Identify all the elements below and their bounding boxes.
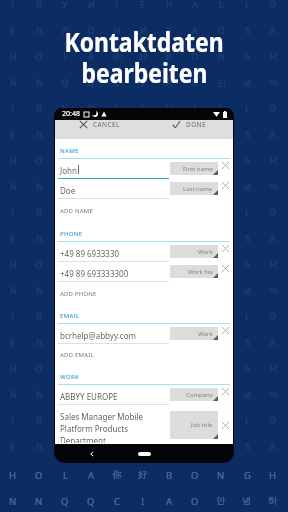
button[interactable]: ADD EMAIL: [60, 344, 233, 366]
button[interactable]: Delete: [221, 326, 230, 335]
staticText: A: [166, 180, 172, 192]
staticText: I: [141, 76, 145, 88]
staticText: У: [62, 0, 68, 10]
staticText: Q: [61, 388, 69, 400]
button[interactable]: Delete: [221, 161, 230, 170]
staticText: L: [245, 102, 250, 114]
button[interactable]: Delete: [221, 264, 230, 273]
staticText: Т: [114, 0, 120, 10]
staticText: Л: [36, 232, 43, 244]
staticText: 你: [113, 259, 122, 270]
button[interactable]: Company: [170, 388, 218, 401]
staticText: А: [192, 336, 198, 348]
button[interactable]: ABBYY EUROPE: [55, 385, 233, 405]
staticText: L: [219, 414, 224, 426]
staticText: 녕: [243, 389, 252, 400]
staticText: I: [141, 495, 145, 508]
button[interactable]: Work fax: [170, 265, 218, 278]
staticText: ABBYY EUROPE: [60, 391, 118, 402]
staticText: Е: [140, 0, 146, 10]
staticText: DONE: [186, 120, 206, 129]
staticText: NAME: [60, 147, 79, 155]
staticText: Q: [87, 76, 95, 88]
button[interactable]: Last name: [170, 182, 218, 195]
staticText: Л: [62, 440, 69, 452]
staticText: O: [191, 50, 199, 62]
button[interactable]: Delete: [221, 387, 230, 396]
staticText: B: [166, 154, 172, 166]
staticText: Е: [10, 440, 16, 452]
staticText: Company: [186, 391, 213, 399]
staticText: Work fax: [188, 268, 213, 276]
button[interactable]: Delete: [221, 421, 230, 430]
staticText: CANCEL: [93, 120, 120, 129]
staticText: Л: [36, 336, 43, 348]
staticText: L: [245, 310, 250, 322]
staticText: bearbeiten: [81, 54, 208, 91]
staticText: N: [35, 495, 43, 508]
staticText: Л: [62, 336, 69, 348]
staticText: Н: [114, 336, 121, 348]
staticText: S: [245, 24, 250, 36]
staticText: A: [88, 50, 94, 62]
button[interactable]: Delete: [221, 244, 230, 253]
button[interactable]: First name: [170, 162, 218, 175]
staticText: N: [10, 388, 17, 400]
staticText: Doe: [60, 185, 76, 196]
staticText: H: [10, 362, 17, 374]
staticText: O: [191, 154, 199, 166]
button[interactable]: DONE: [144, 120, 233, 129]
staticText: L: [63, 154, 68, 166]
button[interactable]: Sales Manager Mobile: [55, 405, 233, 443]
staticText: A: [88, 258, 94, 270]
button[interactable]: +49 89 693333300: [55, 262, 233, 282]
staticText: L: [63, 469, 68, 482]
button[interactable]: +49 89 6933330: [55, 242, 233, 262]
staticText: 녕: [243, 77, 252, 88]
staticText: 好: [139, 259, 148, 270]
staticText: O: [35, 258, 43, 270]
button[interactable]: Doe: [55, 179, 233, 199]
button[interactable]: ADD NAME: [60, 199, 233, 223]
staticText: И: [140, 128, 147, 140]
staticText: O: [191, 76, 199, 88]
staticText: 녕: [242, 495, 252, 507]
button[interactable]: Work: [170, 327, 218, 340]
button[interactable]: bcrhelp@abbyy.com: [55, 324, 233, 344]
staticText: 하: [268, 495, 278, 507]
staticText: Е: [140, 102, 146, 114]
staticText: Н: [166, 414, 173, 426]
staticText: B: [166, 469, 173, 482]
button[interactable]: Job title: [170, 411, 218, 439]
staticText: N: [9, 495, 17, 508]
staticText: +49 89 693333300: [60, 268, 129, 279]
button[interactable]: CANCEL: [55, 120, 144, 129]
button[interactable]: Delete: [221, 181, 230, 190]
staticText: ADD PHONE: [60, 290, 97, 298]
staticText: В: [36, 310, 42, 322]
button[interactable]: Back: [89, 451, 95, 457]
button[interactable]: John: [55, 159, 233, 179]
staticText: L: [219, 0, 224, 10]
staticText: И: [140, 336, 147, 348]
button[interactable]: ADD PHONE: [60, 282, 233, 305]
staticText: Т: [10, 102, 16, 114]
button[interactable]: Work: [170, 245, 218, 258]
staticText: WORK: [60, 373, 80, 381]
staticText: А: [192, 0, 198, 10]
staticText: ADD NAME: [60, 207, 93, 215]
staticText: H: [270, 362, 277, 374]
staticText: Q: [87, 495, 95, 508]
staticText: 녕: [243, 181, 252, 192]
staticText: L: [245, 0, 250, 10]
staticText: 안: [217, 389, 226, 400]
